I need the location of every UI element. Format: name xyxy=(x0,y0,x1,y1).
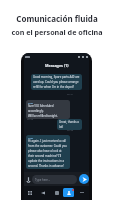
button[interactable]: Tom xyxy=(26,135,70,169)
button[interactable]: Messages xyxy=(63,188,74,197)
button[interactable]: All apps xyxy=(25,188,34,197)
staticText: Tom xyxy=(28,101,34,104)
staticText: Great, thanks a lot! xyxy=(59,120,80,129)
staticText: 09:45 xyxy=(27,117,34,120)
staticText: Hi again. I just received a call from th… xyxy=(28,139,67,168)
staticText: Tom xyxy=(28,136,34,139)
staticText: Good morning, Spare parts A40 are used u… xyxy=(33,75,80,89)
staticText: Comunicación fluida xyxy=(16,13,98,24)
button[interactable]: Back xyxy=(38,188,47,197)
button[interactable]: Send message xyxy=(79,174,89,184)
button[interactable]: Tom xyxy=(26,100,70,119)
button[interactable]: Good morning, Spare parts A40 are used u… xyxy=(31,74,82,90)
staticText: Sure! EU Scheduled accordingly. Will be … xyxy=(28,104,68,118)
staticText: Type here… xyxy=(35,178,51,182)
button[interactable]: Attach file xyxy=(24,175,32,183)
button[interactable]: Camera xyxy=(52,188,61,197)
button[interactable]: Great, thanks a lot! xyxy=(57,119,82,130)
button[interactable]: Type here… xyxy=(32,175,77,184)
staticText: con el personal de oficina xyxy=(11,27,103,37)
staticText: 09:41 xyxy=(67,92,74,95)
staticText: 09:46 xyxy=(67,128,74,131)
staticText: Messages (1) xyxy=(45,63,69,68)
